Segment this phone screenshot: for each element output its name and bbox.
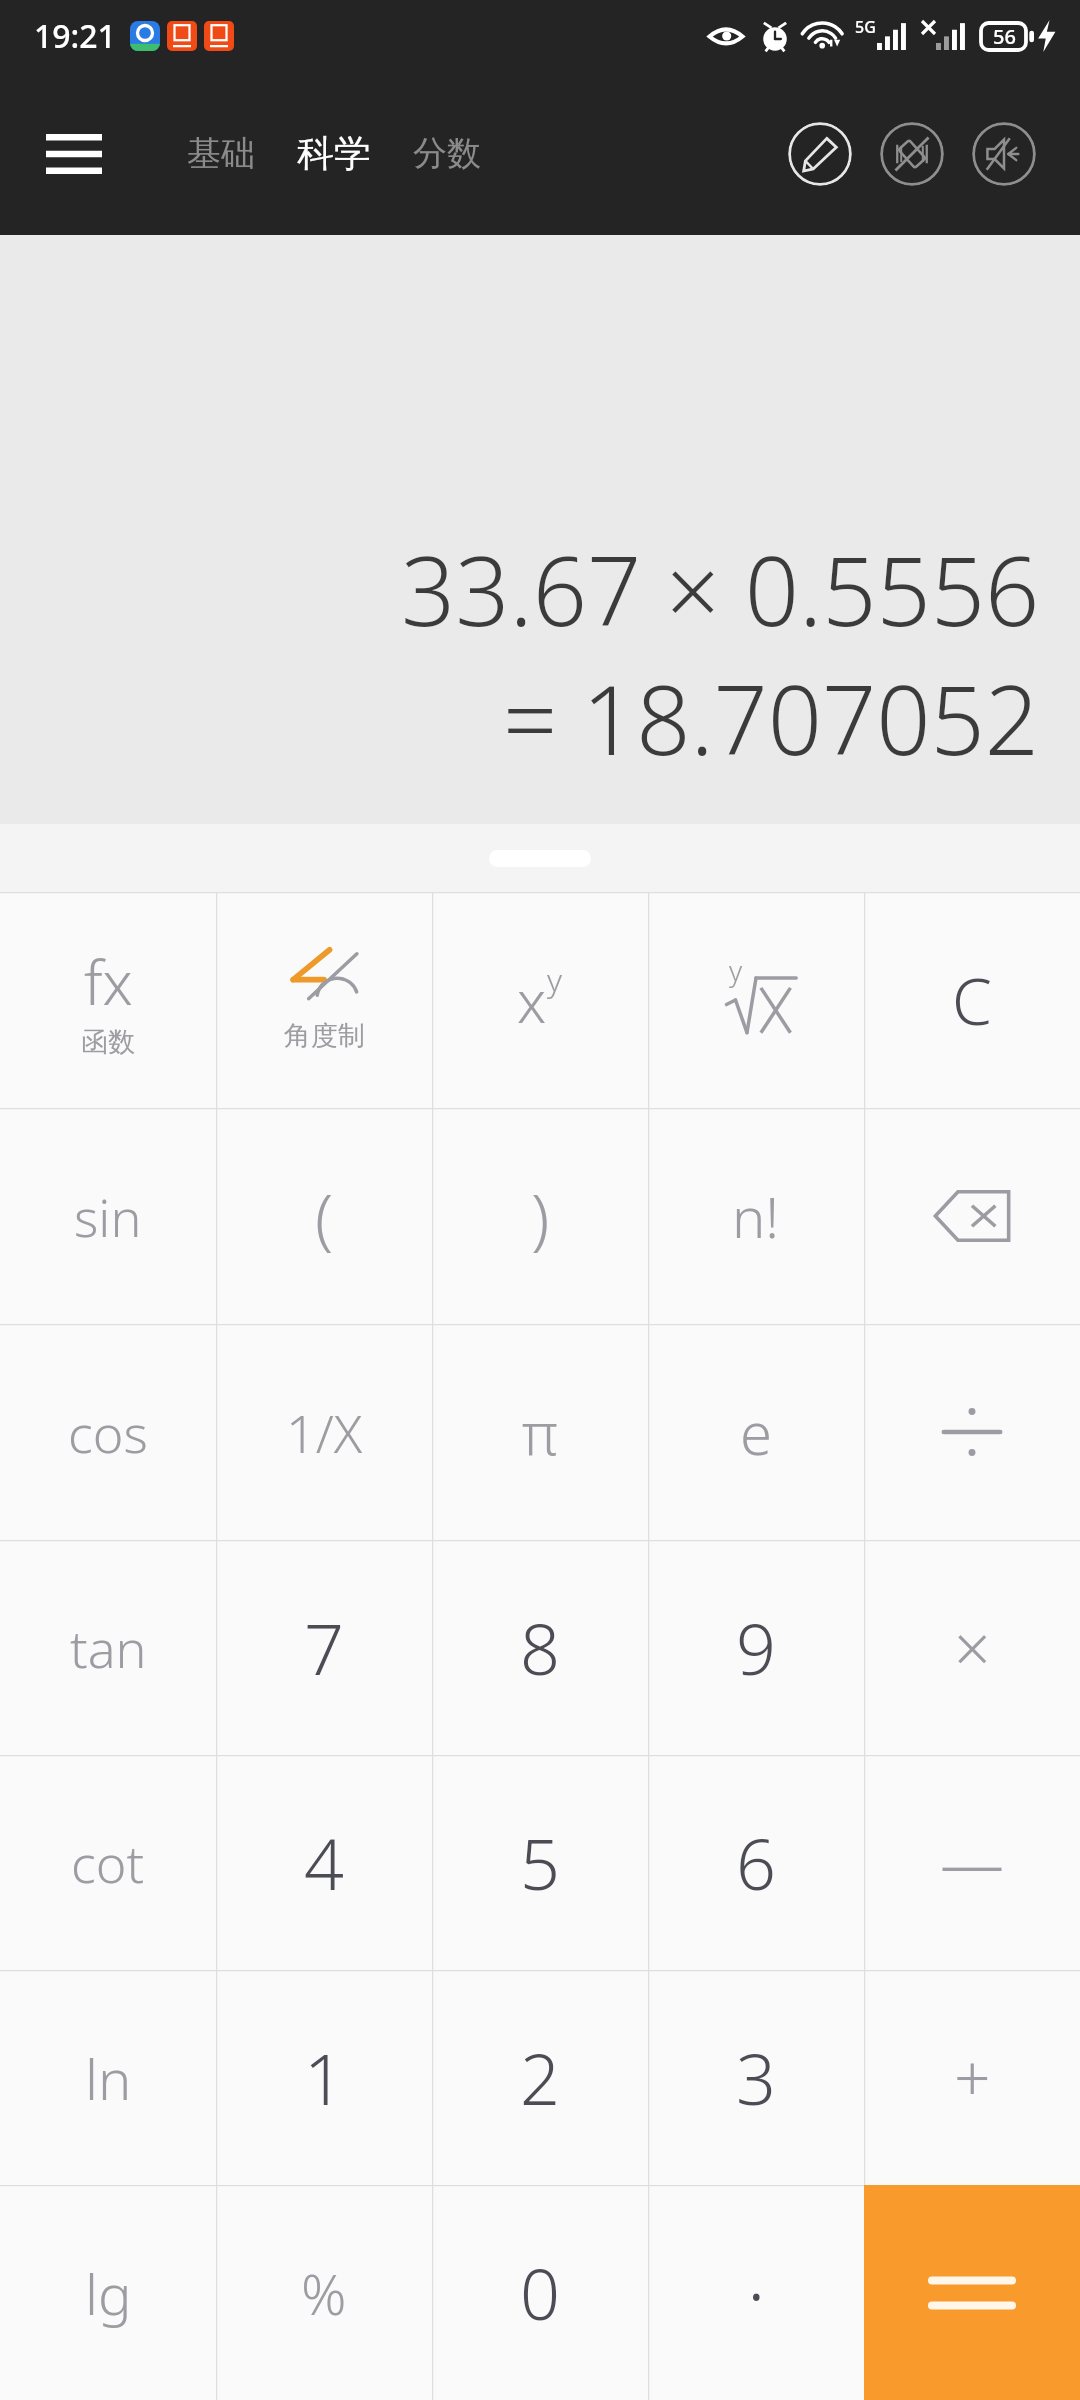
button[interactable]: 科学 — [285, 120, 383, 187]
button[interactable]: % — [216, 2185, 432, 2400]
button[interactable]: cos — [0, 1324, 216, 1540]
staticText: + — [954, 2034, 991, 2121]
staticText: tan — [70, 1612, 147, 1683]
staticText: 函数 — [81, 1025, 135, 1059]
button[interactable]: Menu — [30, 110, 118, 198]
button[interactable]: Backspace — [864, 1108, 1080, 1324]
staticText: — — [940, 1819, 1004, 1906]
staticText: 1/X — [286, 1397, 363, 1468]
staticText: 9 — [736, 1600, 776, 1695]
staticText: % — [301, 2255, 347, 2331]
button[interactable]: ( — [216, 1108, 432, 1324]
button[interactable]: 4 — [216, 1755, 432, 1970]
staticText: 5 — [520, 1815, 560, 1910]
staticText: e — [740, 1393, 773, 1472]
button[interactable]: C — [864, 892, 1080, 1108]
staticText: π — [522, 1393, 558, 1472]
button[interactable]: Equals — [864, 2185, 1080, 2400]
button[interactable]: 1/X — [216, 1324, 432, 1540]
staticText: 1 — [304, 2030, 344, 2125]
button[interactable]: × — [864, 1540, 1080, 1755]
staticText: × — [954, 1604, 991, 1691]
staticText: · — [747, 2241, 766, 2345]
button[interactable]: — — [864, 1755, 1080, 1970]
staticText: 7 — [304, 1600, 344, 1695]
button[interactable]: Vibration off — [880, 122, 944, 186]
button[interactable]: 7 — [216, 1540, 432, 1755]
staticText: 5G — [855, 16, 876, 38]
button[interactable]: Divide — [864, 1324, 1080, 1540]
button[interactable]: lg — [0, 2185, 216, 2400]
button[interactable]: Angle unit — [216, 892, 432, 1108]
staticText: ( — [315, 1171, 334, 1261]
button[interactable]: Edit — [788, 122, 852, 186]
button[interactable]: e — [648, 1324, 864, 1540]
staticText: 6 — [736, 1815, 776, 1910]
staticText: fx — [84, 941, 133, 1023]
button[interactable]: 基础 — [175, 122, 267, 185]
staticText: 基础 — [187, 132, 255, 175]
button[interactable]: x to the power of y — [432, 892, 648, 1108]
staticText: x — [517, 961, 547, 1040]
button[interactable]: · — [648, 2185, 864, 2400]
staticText: 4 — [304, 1815, 344, 1910]
button[interactable]: tan — [0, 1540, 216, 1755]
button[interactable]: 分数 — [401, 122, 493, 185]
button[interactable]: ln — [0, 1970, 216, 2185]
staticText: 角度制 — [284, 1019, 365, 1053]
button[interactable]: n! — [648, 1108, 864, 1324]
button[interactable]: + — [864, 1970, 1080, 2185]
staticText: C — [952, 957, 992, 1044]
button[interactable]: 0 — [432, 2185, 648, 2400]
staticText: 33.67 × 0.5556 — [401, 524, 1040, 653]
staticText: lg — [85, 2255, 132, 2331]
staticText: y — [547, 958, 563, 1002]
button[interactable]: 5 — [432, 1755, 648, 1970]
button[interactable]: 1 — [216, 1970, 432, 2185]
button[interactable]: sin — [0, 1108, 216, 1324]
button[interactable]: 9 — [648, 1540, 864, 1755]
button[interactable]: fx — [0, 892, 216, 1108]
staticText: 2 — [520, 2030, 560, 2125]
staticText: 科学 — [297, 130, 371, 177]
staticText: sin — [74, 1181, 142, 1252]
staticText: cot — [71, 1827, 145, 1898]
button[interactable]: ) — [432, 1108, 648, 1324]
button[interactable]: y-th root of x — [648, 892, 864, 1108]
staticText: 分数 — [413, 132, 481, 175]
button[interactable]: cot — [0, 1755, 216, 1970]
button[interactable]: 6 — [648, 1755, 864, 1970]
staticText: 56 — [993, 23, 1016, 50]
staticText: 8 — [520, 1600, 560, 1695]
staticText: y — [729, 951, 743, 989]
button[interactable]: π — [432, 1324, 648, 1540]
button[interactable]: 2 — [432, 1970, 648, 2185]
staticText: = 18.707052 — [503, 653, 1040, 782]
button[interactable]: 8 — [432, 1540, 648, 1755]
staticText: cos — [68, 1397, 148, 1468]
staticText: 19:21 — [34, 14, 116, 58]
staticText: ln — [85, 2040, 132, 2116]
staticText: n! — [732, 1178, 780, 1254]
button[interactable]: Sound off — [972, 122, 1036, 186]
staticText: ) — [531, 1171, 550, 1261]
staticText: 0 — [520, 2245, 560, 2340]
staticText: 3 — [736, 2030, 776, 2125]
button[interactable]: 3 — [648, 1970, 864, 2185]
